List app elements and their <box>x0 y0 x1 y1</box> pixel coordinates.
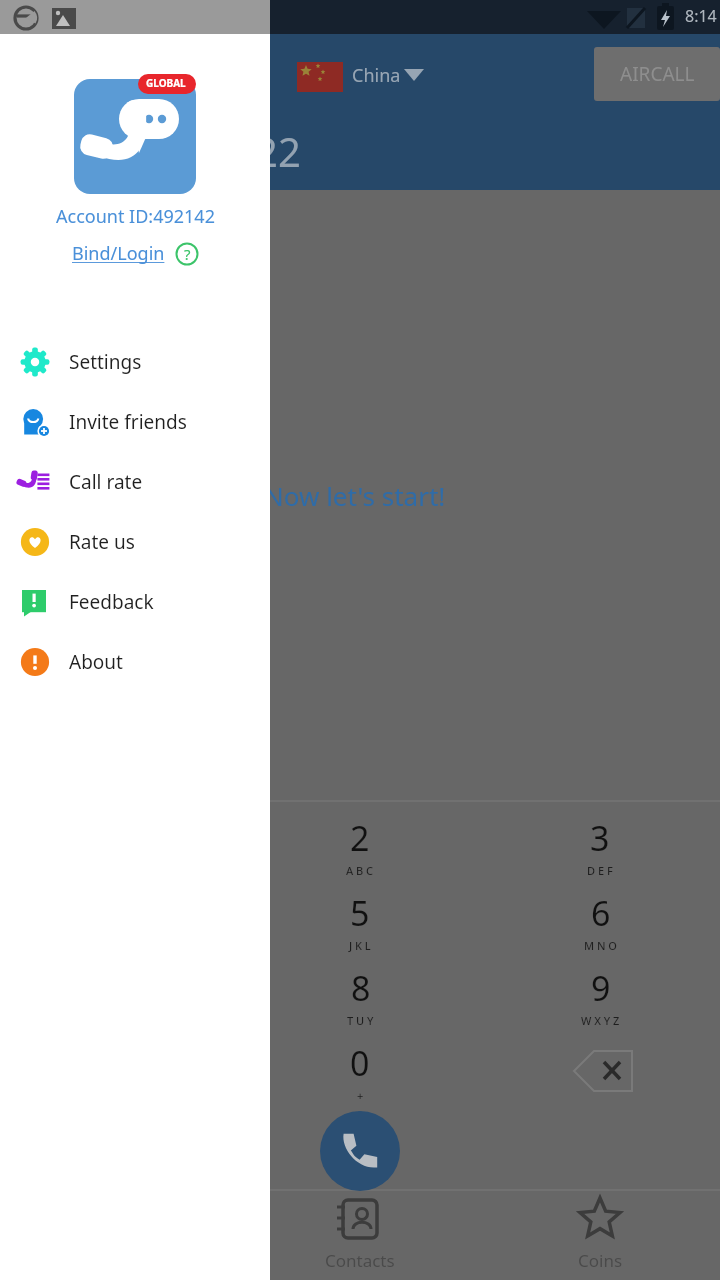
staticText: Rate us <box>69 529 135 555</box>
staticText: 5 <box>350 890 370 936</box>
button[interactable]: 8 <box>300 959 420 1033</box>
staticText: ? <box>184 244 191 264</box>
button[interactable]: Coins <box>530 1191 670 1280</box>
button[interactable]: Settings <box>0 332 270 392</box>
staticText: Coins <box>578 1249 623 1272</box>
button[interactable]: 5 <box>300 884 420 958</box>
staticText: China <box>352 63 401 88</box>
staticText: Account ID:492142 <box>56 204 215 229</box>
staticText: AIRCALL <box>620 61 695 87</box>
button[interactable]: Contacts <box>290 1191 430 1280</box>
button[interactable]: Feedback <box>0 572 270 632</box>
button[interactable]: AIRCALL <box>594 47 720 101</box>
staticText: W X Y Z <box>581 1013 620 1028</box>
button[interactable]: Backspace <box>560 1043 640 1099</box>
staticText: About <box>69 649 123 675</box>
staticText: 3 <box>590 815 610 861</box>
staticText: Contacts <box>325 1249 395 1272</box>
staticText: 8 <box>351 965 371 1011</box>
button[interactable]: 3 <box>540 809 660 883</box>
button[interactable]: Bind/Login <box>72 241 165 266</box>
staticText: 8:14 <box>685 5 717 27</box>
staticText: + <box>357 1088 364 1103</box>
staticText: M N O <box>584 938 617 953</box>
staticText: Invite friends <box>69 409 187 435</box>
button[interactable]: About <box>0 632 270 692</box>
staticText: 22 <box>255 124 301 178</box>
button[interactable]: App icon <box>74 74 196 194</box>
button[interactable]: 9 <box>540 959 660 1033</box>
staticText: Now let's start! <box>264 478 446 513</box>
button[interactable]: Invite friends <box>0 392 270 452</box>
button[interactable]: 6 <box>540 884 660 958</box>
staticText: 2 <box>350 815 370 861</box>
staticText: Feedback <box>69 589 154 615</box>
staticText: Bind/Login <box>72 241 165 266</box>
staticText: T U Y <box>347 1013 374 1028</box>
staticText: D E F <box>587 863 613 878</box>
staticText: A B C <box>346 863 374 878</box>
staticText: Settings <box>69 349 142 375</box>
button[interactable]: 2 <box>300 809 420 883</box>
button[interactable]: Call rate <box>0 452 270 512</box>
staticText: GLOBAL <box>146 76 186 90</box>
staticText: 0 <box>350 1040 370 1086</box>
staticText: J K L <box>349 938 371 953</box>
staticText: Call rate <box>69 469 143 495</box>
staticText: 9 <box>591 965 611 1011</box>
button[interactable]: Rate us <box>0 512 270 572</box>
button[interactable]: 0 <box>300 1034 420 1108</box>
staticText: 6 <box>591 890 611 936</box>
button[interactable]: Help <box>175 242 199 266</box>
